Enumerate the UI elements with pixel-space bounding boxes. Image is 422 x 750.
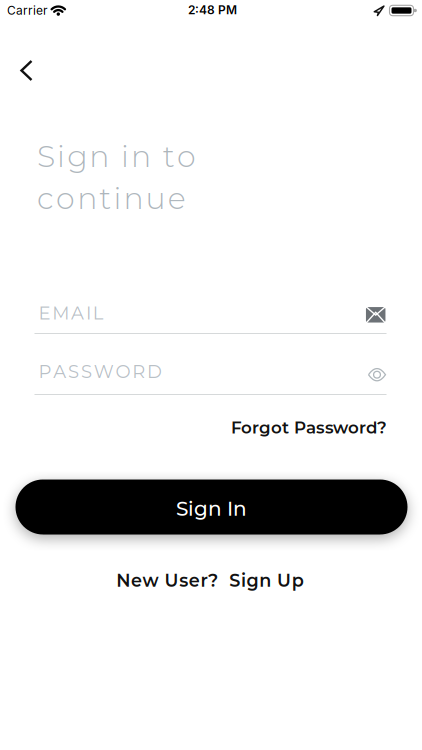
staticText: t [99, 180, 111, 217]
button[interactable]: Sign In [15, 479, 407, 534]
staticText: S [68, 360, 79, 382]
staticText: o [56, 180, 75, 217]
button[interactable]: Show password [363, 362, 391, 388]
staticText: n [131, 138, 151, 175]
staticText: S [81, 360, 92, 382]
staticText: g [67, 138, 87, 175]
staticText: A [53, 360, 66, 382]
staticText: e [189, 570, 200, 591]
staticText: M [52, 302, 69, 324]
staticText: W [94, 360, 114, 382]
staticText: i [113, 180, 121, 217]
staticText: n [89, 138, 109, 175]
staticText: u [146, 180, 166, 217]
staticText: w [143, 570, 159, 591]
staticText: i [121, 138, 129, 175]
staticText: r [200, 570, 207, 591]
staticText: L [93, 302, 104, 324]
staticText: ? [208, 570, 218, 591]
staticText: O [115, 360, 130, 382]
staticText: R [132, 360, 145, 382]
staticText: U [164, 570, 178, 591]
staticText: E [38, 302, 50, 324]
staticText: e [131, 570, 142, 591]
button[interactable]: Password [34, 350, 386, 395]
button[interactable]: Email [34, 289, 386, 334]
staticText: i [57, 138, 65, 175]
staticText: 2:48 PM [188, 3, 237, 17]
staticText: U [277, 570, 291, 591]
staticText: n [123, 180, 143, 217]
button[interactable]: Back [9, 49, 43, 92]
staticText: N [116, 570, 130, 591]
staticText: S [37, 138, 55, 175]
staticText: P [38, 360, 51, 382]
staticText: S [229, 570, 240, 591]
staticText: n [77, 180, 97, 217]
staticText: t [163, 138, 175, 175]
staticText: p [292, 570, 304, 591]
staticText: I [86, 302, 91, 324]
staticText: n [259, 570, 271, 591]
staticText: s [179, 570, 188, 591]
staticText: Carrier [7, 3, 48, 17]
staticText: c [37, 180, 54, 217]
staticText: Sign In [176, 496, 247, 521]
staticText: Forgot Password? [231, 417, 387, 438]
button[interactable]: N [60, 569, 360, 591]
button[interactable]: Forgot Password? [147, 416, 387, 438]
staticText: i [241, 570, 246, 591]
staticText: o [177, 138, 196, 175]
staticText: A [71, 302, 84, 324]
staticText: e [168, 180, 186, 217]
staticText: D [147, 360, 162, 382]
staticText: g [246, 570, 258, 591]
